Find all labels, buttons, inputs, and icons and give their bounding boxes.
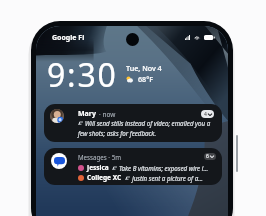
button[interactable]: Mary [44, 104, 222, 142]
staticText: Will send stills instead of video; email… [85, 119, 211, 127]
button[interactable]: Expand [201, 110, 214, 118]
staticText: Mary [78, 109, 96, 119]
staticText: 4 [204, 111, 207, 118]
button[interactable]: Expand [204, 153, 216, 160]
staticText: 68°F [138, 74, 154, 84]
staticText: Take B vitamins; exposed wire i... [119, 164, 209, 172]
staticText: 9:30 [47, 53, 118, 97]
staticText: · now [99, 110, 116, 119]
staticText: Tue, Nov 4 [126, 63, 162, 73]
button[interactable]: Messages · 5m [44, 148, 222, 185]
staticText: Jessica [87, 163, 109, 172]
staticText: 6 [206, 153, 209, 160]
staticText: Justin sent a picture of a... [132, 174, 203, 182]
staticText: College XC [87, 173, 122, 182]
staticText: Messages · 5m [78, 153, 121, 161]
staticText: few shots; asks for feedback. [78, 129, 156, 137]
staticText: Google Fi [52, 33, 85, 43]
